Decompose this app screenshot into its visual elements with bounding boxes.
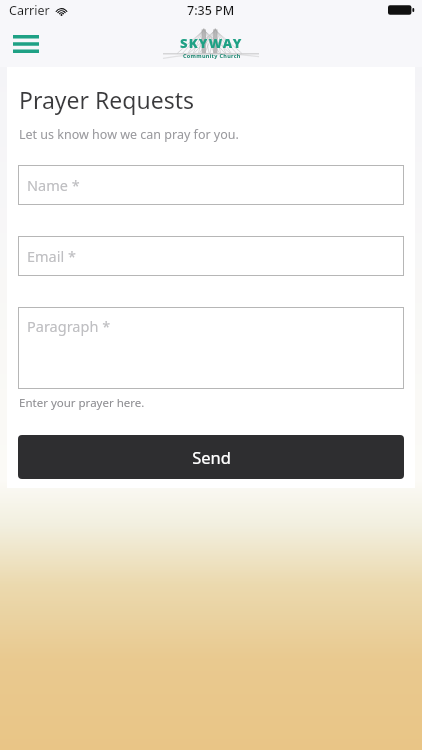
staticText: Community Church (183, 52, 241, 59)
staticText: Paragraph * (27, 316, 111, 336)
staticText: 7:35 PM (187, 2, 235, 19)
staticText: Prayer Requests (19, 84, 194, 115)
button[interactable]: Email * (18, 236, 404, 276)
staticText: Email * (27, 246, 76, 266)
staticText: Enter your prayer here. (19, 395, 145, 411)
button[interactable]: Open navigation menu (6, 24, 46, 64)
staticText: SKYWAY (180, 34, 243, 52)
button[interactable]: Send (18, 435, 404, 479)
button[interactable]: Skyway Community Church home (163, 26, 259, 60)
staticText: Let us know how we can pray for you. (19, 126, 239, 143)
staticText: Carrier (9, 2, 50, 19)
button[interactable]: Paragraph * (18, 307, 404, 389)
button[interactable]: Name * (18, 165, 404, 205)
staticText: Name * (27, 175, 80, 195)
staticText: Send (192, 446, 231, 468)
